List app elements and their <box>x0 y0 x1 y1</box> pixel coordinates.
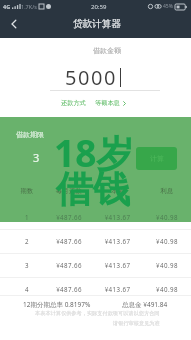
staticText: 3 <box>7 261 47 269</box>
staticText: ¥40.98 <box>145 285 189 293</box>
staticText: ¥487.66 <box>47 237 91 245</box>
staticText: 请银行审核意见为准 <box>113 320 160 327</box>
staticText: ¥40.98 <box>145 213 189 221</box>
staticText: 还款方式 <box>61 99 86 107</box>
staticText: ¥487.66 <box>47 261 91 269</box>
button[interactable]: 计算 <box>136 147 177 170</box>
staticText: 借款金额 <box>93 46 121 55</box>
staticText: 1.7K/s <box>21 3 37 10</box>
staticText: ¥487.66 <box>47 285 91 293</box>
staticText: 计算 <box>150 154 164 163</box>
staticText: ¥413.67 <box>95 237 140 245</box>
staticText: 利息 <box>145 187 189 195</box>
staticText: 本表本计算仅供参考，实际支付款项可以请以您方合同 <box>35 310 160 317</box>
staticText: 等额本息 <box>95 99 120 107</box>
staticText: 1 <box>7 213 47 221</box>
staticText: 20:59 <box>91 3 107 11</box>
staticText: ¥40.98 <box>145 261 189 269</box>
staticText: 总息金 ¥491.84 <box>122 300 168 309</box>
staticText: 贷款计算器 <box>73 18 121 30</box>
button[interactable]: Back <box>4 14 24 34</box>
button[interactable]: 还款方式 <box>58 97 130 109</box>
staticText: 3 <box>33 150 40 165</box>
staticText: 12期分期总率 0.8197% <box>23 300 91 309</box>
staticText: 借款期限 <box>16 130 44 139</box>
staticText: 本金 <box>95 187 140 195</box>
staticText: ¥40.98 <box>145 237 189 245</box>
staticText: 借钱 <box>56 166 130 213</box>
staticText: ¥413.67 <box>95 213 140 221</box>
staticText: 4 <box>7 285 47 293</box>
staticText: 4G <box>3 3 11 10</box>
staticText: 5000 <box>65 64 118 91</box>
staticText: 2 <box>7 237 47 245</box>
staticText: 18岁 <box>54 127 134 178</box>
staticText: ¥413.67 <box>95 285 140 293</box>
staticText: ¥413.67 <box>95 261 140 269</box>
staticText: 45% <box>163 3 173 10</box>
staticText: 期数 <box>7 187 47 195</box>
staticText: 每月还款 <box>47 187 91 195</box>
staticText: ¥487.66 <box>47 213 91 221</box>
